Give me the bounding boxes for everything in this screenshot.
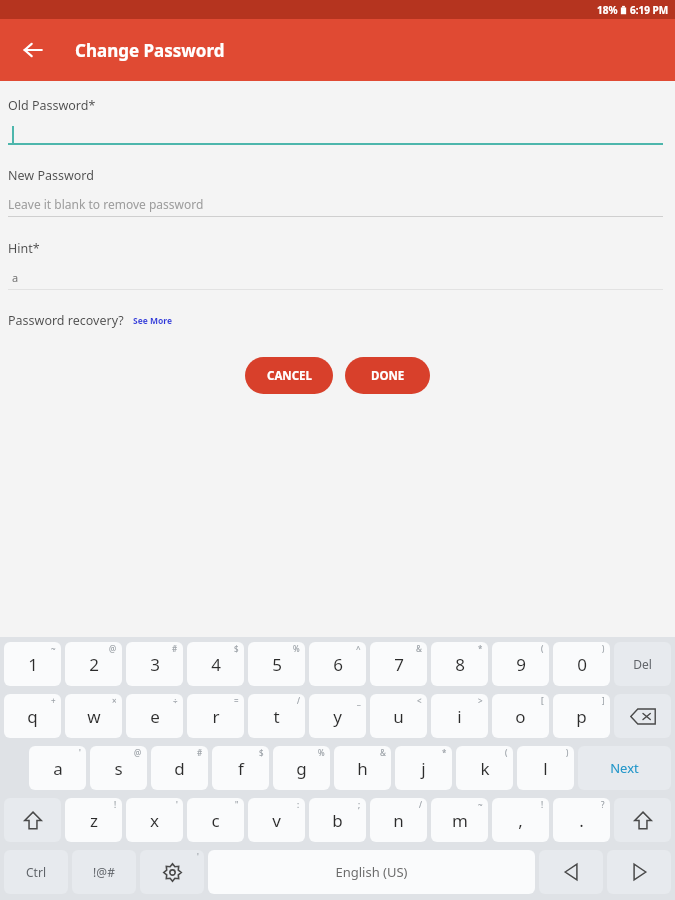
button[interactable]: f bbox=[212, 746, 269, 790]
button[interactable]: e bbox=[126, 694, 183, 738]
staticText: l bbox=[543, 757, 548, 780]
button[interactable]: s bbox=[90, 746, 147, 790]
staticText: < bbox=[417, 695, 422, 706]
button[interactable]: p bbox=[553, 694, 610, 738]
button[interactable]: i bbox=[431, 694, 488, 738]
button[interactable]: w bbox=[65, 694, 122, 738]
button[interactable]: g bbox=[273, 746, 330, 790]
staticText: a bbox=[53, 757, 63, 780]
staticText: ~ bbox=[478, 799, 483, 810]
staticText: v bbox=[272, 809, 281, 832]
button[interactable]: m bbox=[431, 798, 488, 842]
staticText: * bbox=[478, 643, 483, 654]
staticText: @ bbox=[134, 747, 142, 758]
button[interactable]: a bbox=[29, 746, 86, 790]
staticText: ÷ bbox=[173, 695, 178, 706]
button[interactable]: v bbox=[248, 798, 305, 842]
staticText: 4 bbox=[211, 653, 221, 676]
staticText: ' bbox=[176, 799, 178, 810]
staticText: s bbox=[114, 757, 123, 780]
button[interactable]: 4 bbox=[187, 642, 244, 686]
staticText: Leave it blank to remove password bbox=[8, 196, 204, 212]
staticText: 2 bbox=[89, 653, 99, 676]
button[interactable]: 1 bbox=[4, 642, 61, 686]
staticText: 9 bbox=[516, 653, 526, 676]
button[interactable]: 9 bbox=[492, 642, 549, 686]
staticText: k bbox=[480, 757, 490, 780]
button[interactable]: , bbox=[492, 798, 549, 842]
button[interactable]: Del bbox=[614, 642, 671, 686]
button[interactable]: 7 bbox=[370, 642, 427, 686]
button[interactable]: !@# bbox=[72, 850, 136, 894]
staticText: y bbox=[333, 705, 342, 728]
staticText: ^ bbox=[356, 643, 361, 654]
button[interactable]: u bbox=[370, 694, 427, 738]
staticText: ? bbox=[601, 799, 605, 810]
button[interactable]: Move cursor left bbox=[539, 850, 603, 894]
staticText: h bbox=[357, 757, 368, 780]
button[interactable]: DONE bbox=[345, 357, 430, 394]
button[interactable]: t bbox=[248, 694, 305, 738]
button[interactable]: o bbox=[492, 694, 549, 738]
button[interactable]: Ctrl bbox=[4, 850, 68, 894]
staticText: Ctrl bbox=[26, 864, 46, 880]
staticText: ( bbox=[541, 643, 544, 654]
button[interactable]: 8 bbox=[431, 642, 488, 686]
button[interactable]: 0 bbox=[553, 642, 610, 686]
button[interactable]: y bbox=[309, 694, 366, 738]
button[interactable]: z bbox=[65, 798, 122, 842]
staticText: 3 bbox=[150, 653, 160, 676]
button[interactable]: Backspace bbox=[614, 694, 671, 738]
button[interactable]: j bbox=[395, 746, 452, 790]
button[interactable]: 6 bbox=[309, 642, 366, 686]
staticText: Change Password bbox=[75, 39, 225, 62]
button[interactable]: Back bbox=[13, 30, 53, 70]
staticText: w bbox=[87, 705, 101, 728]
staticText: ' bbox=[197, 851, 199, 862]
button[interactable]: See More bbox=[132, 313, 174, 329]
staticText: & bbox=[380, 747, 386, 758]
staticText: $ bbox=[234, 643, 239, 654]
staticText: ; bbox=[358, 799, 361, 810]
button[interactable]: b bbox=[309, 798, 366, 842]
button[interactable]: Next bbox=[578, 746, 671, 790]
staticText: ( bbox=[505, 747, 508, 758]
staticText: r bbox=[212, 705, 220, 728]
staticText: t bbox=[273, 705, 280, 728]
button[interactable]: x bbox=[126, 798, 183, 842]
button[interactable]: 2 bbox=[65, 642, 122, 686]
button[interactable]: r bbox=[187, 694, 244, 738]
staticText: " bbox=[235, 799, 239, 810]
button[interactable]: h bbox=[334, 746, 391, 790]
button[interactable]: k bbox=[456, 746, 513, 790]
button[interactable]: English (US) bbox=[208, 850, 535, 894]
staticText: : bbox=[297, 799, 300, 810]
staticText: * bbox=[442, 747, 447, 758]
button[interactable]: n bbox=[370, 798, 427, 842]
button[interactable]: 3 bbox=[126, 642, 183, 686]
button[interactable]: Shift bbox=[614, 798, 671, 842]
staticText: [ bbox=[541, 695, 544, 706]
staticText: + bbox=[51, 695, 56, 706]
staticText: 7 bbox=[394, 653, 404, 676]
button[interactable]: d bbox=[151, 746, 208, 790]
staticText: m bbox=[452, 809, 468, 832]
button[interactable]: l bbox=[517, 746, 574, 790]
button[interactable]: . bbox=[553, 798, 610, 842]
staticText: ) bbox=[566, 747, 569, 758]
staticText: i bbox=[457, 705, 462, 728]
staticText: DONE bbox=[371, 368, 405, 384]
button[interactable]: 5 bbox=[248, 642, 305, 686]
button[interactable]: Keyboard settings bbox=[140, 850, 204, 894]
button[interactable]: Move cursor right bbox=[607, 850, 671, 894]
button[interactable]: q bbox=[4, 694, 61, 738]
staticText: Hint* bbox=[8, 240, 40, 257]
staticText: c bbox=[211, 809, 220, 832]
button[interactable]: Shift bbox=[4, 798, 61, 842]
button[interactable]: c bbox=[187, 798, 244, 842]
staticText: f bbox=[238, 757, 244, 780]
staticText: n bbox=[393, 809, 404, 832]
staticText: 8 bbox=[455, 653, 465, 676]
button[interactable]: CANCEL bbox=[245, 357, 333, 394]
staticText: Password recovery? bbox=[8, 312, 124, 329]
